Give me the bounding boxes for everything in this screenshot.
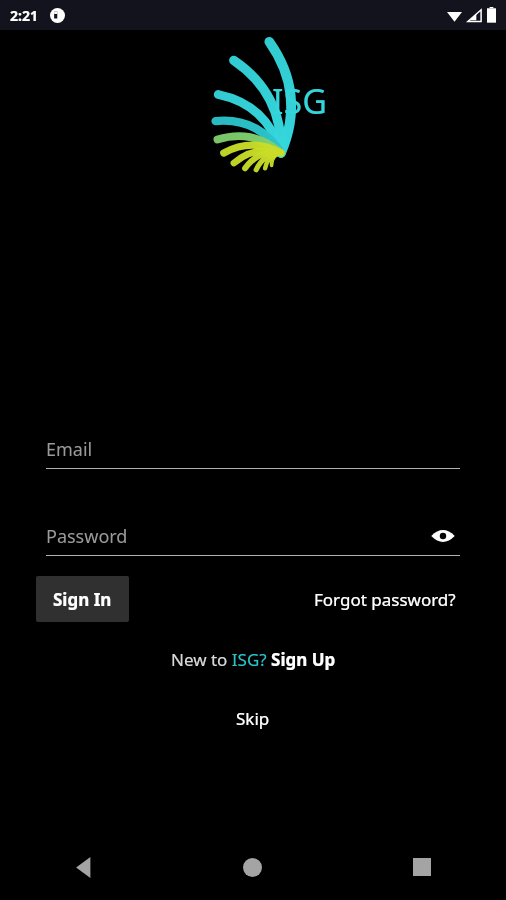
staticText: Skip	[236, 707, 270, 730]
staticText: New to ISG? Sign Up	[171, 648, 336, 671]
button[interactable]: Email	[46, 430, 460, 469]
staticText: 2:21	[10, 6, 38, 25]
button[interactable]: Password	[46, 517, 460, 556]
staticText: ISG	[272, 78, 327, 124]
staticText: Email	[46, 437, 93, 462]
staticText: Forgot password?	[314, 588, 456, 611]
button[interactable]: Forgot password?	[310, 580, 460, 619]
staticText: Sign In	[53, 588, 112, 611]
button[interactable]: Skip	[222, 701, 284, 736]
button[interactable]: Sign In	[36, 576, 129, 622]
button[interactable]: Back	[0, 834, 168, 900]
button[interactable]: Home	[168, 834, 337, 900]
button[interactable]: Show password	[426, 519, 460, 553]
button[interactable]: New to ISG? Sign Up	[165, 644, 342, 675]
staticText: Password	[46, 524, 128, 549]
button[interactable]: Recent apps	[337, 834, 506, 900]
